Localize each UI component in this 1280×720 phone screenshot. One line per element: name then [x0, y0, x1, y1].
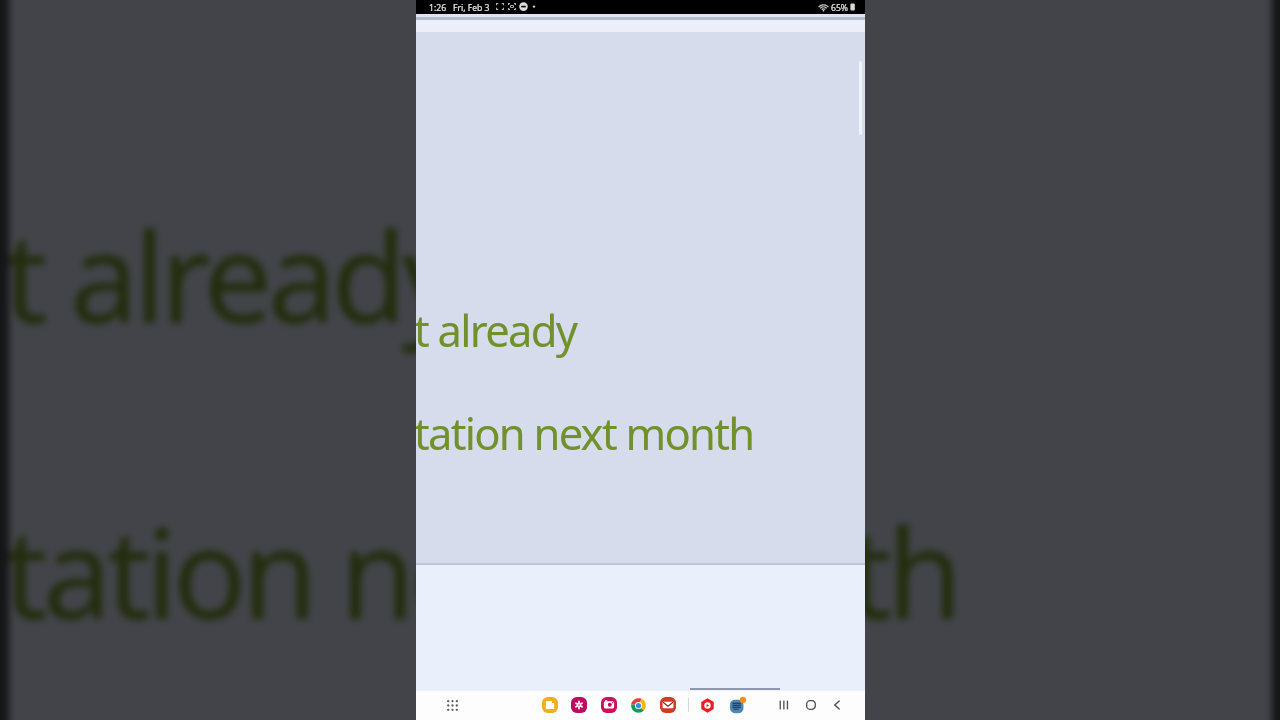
staticText: tation next month — [416, 403, 754, 462]
button[interactable]: YouTube — [693, 691, 721, 719]
staticText: 1:26 — [429, 2, 447, 14]
button[interactable]: Gallery — [565, 691, 593, 719]
staticText: tation next month — [4, 484, 960, 653]
button[interactable]: Prime Video — [723, 691, 751, 719]
button[interactable]: Recents — [770, 691, 798, 719]
button[interactable]: Chrome — [624, 691, 652, 719]
staticText: 65% — [831, 2, 848, 14]
staticText: Fri, Feb 3 — [453, 2, 490, 14]
button[interactable]: Home — [797, 691, 825, 719]
staticText: t already — [416, 300, 577, 359]
button[interactable]: My Files — [536, 691, 564, 719]
button[interactable]: Email — [654, 691, 682, 719]
button[interactable]: Apps — [438, 691, 466, 719]
staticText: t already — [4, 188, 462, 357]
button[interactable]: Back — [823, 691, 851, 719]
button[interactable]: Camera — [595, 691, 623, 719]
